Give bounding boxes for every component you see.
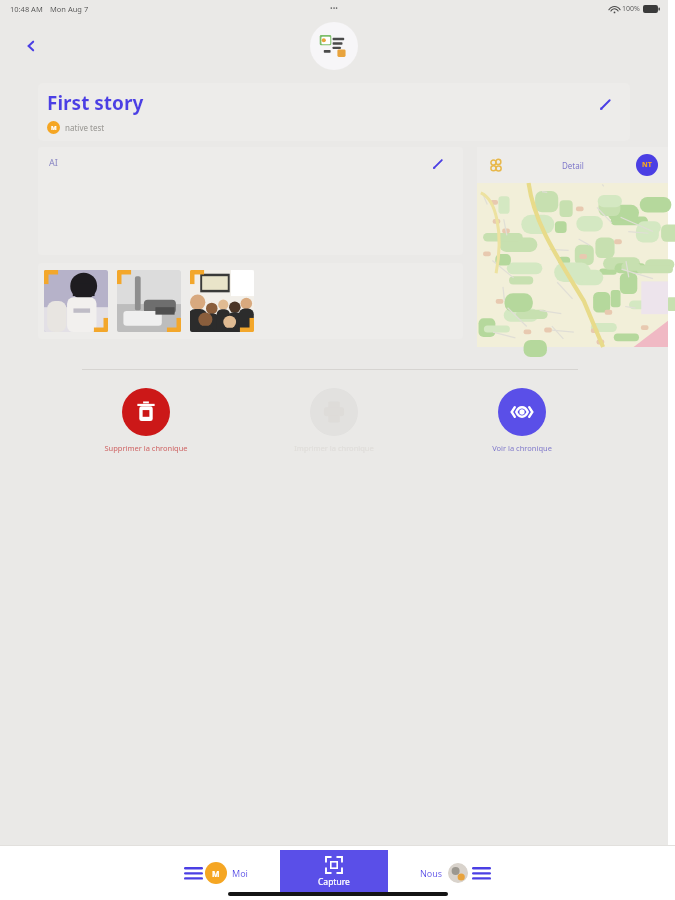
staticText: Detail: [562, 160, 584, 171]
button[interactable]: Back: [16, 31, 46, 61]
staticText: Moi: [232, 867, 248, 879]
button[interactable]: M: [178, 862, 254, 884]
staticText: •••: [330, 4, 338, 14]
button[interactable]: Delete chronicle: [90, 388, 202, 453]
staticText: 100%: [622, 4, 640, 14]
button[interactable]: Edit AI note: [427, 153, 449, 175]
button[interactable]: Edit story title: [594, 93, 616, 115]
button[interactable]: Nous: [414, 863, 497, 883]
staticText: Supprimer la chronique: [104, 443, 188, 453]
staticText: native test: [65, 122, 105, 133]
button[interactable]: Account: [636, 154, 658, 176]
button[interactable]: AI: [38, 147, 463, 255]
staticText: Voir la chronique: [492, 443, 552, 453]
staticText: AI: [49, 156, 58, 168]
button[interactable]: Capture: [280, 850, 388, 895]
staticText: M: [51, 124, 57, 132]
button[interactable]: View chronicle: [466, 388, 578, 453]
button[interactable]: Photo 2: [117, 270, 181, 332]
staticText: M: [212, 868, 220, 879]
button[interactable]: App logo: [310, 22, 358, 70]
staticText: NT: [642, 160, 652, 170]
staticText: Imprimer la chronique: [294, 443, 374, 453]
staticText: First story: [47, 90, 144, 116]
button[interactable]: Photo 3: [190, 270, 254, 332]
button[interactable]: First story: [38, 83, 630, 141]
staticText: Mon Aug 7: [50, 4, 89, 14]
button[interactable]: Photo 1: [44, 270, 108, 332]
button: Print chronicle: [278, 388, 390, 453]
staticText: Capture: [318, 876, 350, 888]
staticText: 10:48 AM: [10, 4, 43, 14]
staticText: Nous: [420, 867, 443, 879]
